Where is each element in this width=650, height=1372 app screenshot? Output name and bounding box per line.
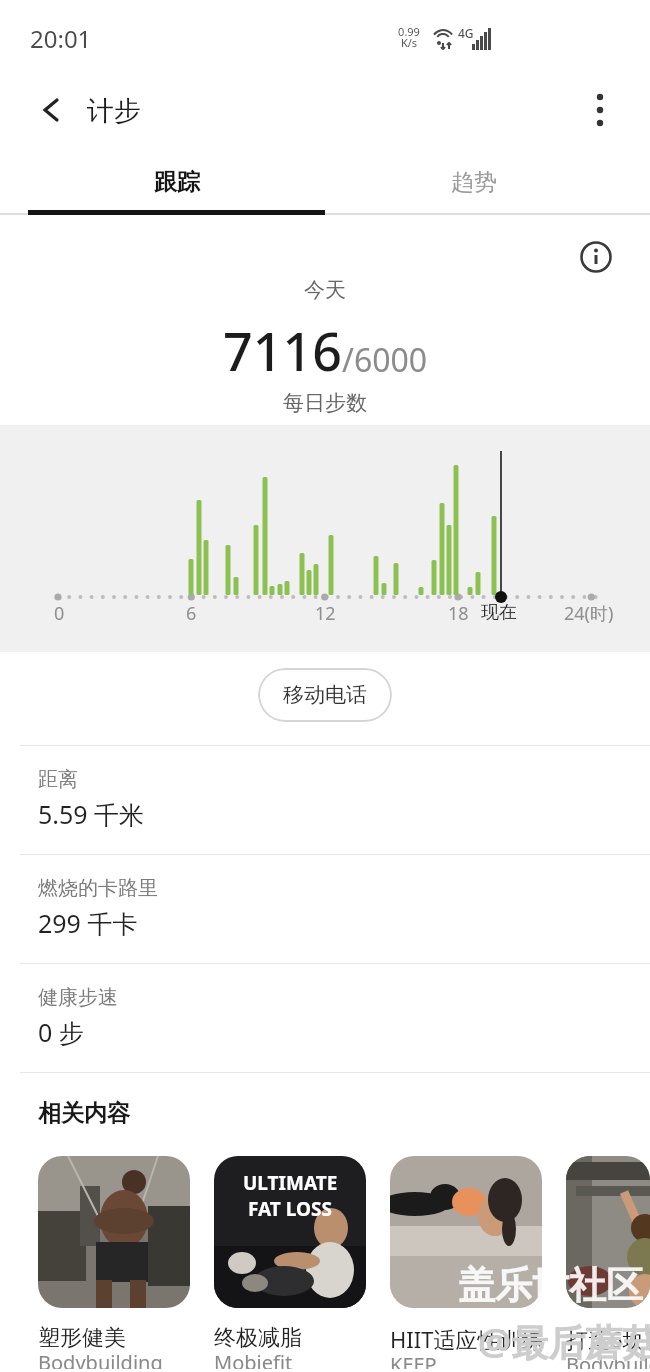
staticText: 打造6块腹肌 <box>566 1324 650 1354</box>
staticText: 每日步数 <box>0 390 650 416</box>
staticText: /6000 <box>342 338 428 382</box>
staticText: 移动电话 <box>283 682 367 708</box>
staticText: 6 <box>186 601 197 626</box>
button[interactable]: 燃烧的卡路里 <box>0 855 650 963</box>
staticText: 0 步 <box>38 1015 84 1049</box>
button[interactable]: 移动电话 <box>258 668 392 722</box>
button[interactable]: 跟踪 <box>28 150 325 215</box>
button[interactable]: ULTIMATE <box>214 1156 366 1308</box>
staticText: 12 <box>315 601 336 626</box>
staticText: 健康步速 <box>38 985 118 1010</box>
staticText: FAT LOSS <box>248 1196 332 1222</box>
staticText: 盖乐世社区 <box>458 1262 643 1309</box>
button[interactable] <box>568 229 624 285</box>
staticText: 跟踪 <box>154 168 200 197</box>
button[interactable] <box>566 1156 650 1308</box>
staticText: @最后蘑菇 <box>478 1316 650 1367</box>
staticText: 现在 <box>481 601 517 624</box>
staticText: 18 <box>448 601 469 626</box>
staticText: 距离 <box>38 767 78 792</box>
staticText: 0.99 K/s <box>398 24 420 51</box>
button[interactable] <box>390 1156 542 1308</box>
staticText: 塑形健美 <box>38 1324 126 1352</box>
staticText: 燃烧的卡路里 <box>38 876 158 901</box>
button[interactable] <box>28 86 76 134</box>
staticText: KEEP <box>390 1351 437 1369</box>
button[interactable]: 健康步速 <box>0 964 650 1072</box>
staticText: 4G <box>458 25 474 41</box>
button[interactable] <box>38 1156 190 1308</box>
staticText: HIIT适应性训练 <box>390 1324 544 1354</box>
staticText: 5.59 千米 <box>38 797 145 831</box>
staticText: 趋势 <box>451 168 497 197</box>
staticText: 7116 <box>223 315 342 386</box>
staticText: 299 千卡 <box>38 906 138 940</box>
staticText: 今天 <box>0 277 650 303</box>
button[interactable] <box>576 86 624 134</box>
staticText: 相关内容 <box>38 1099 130 1128</box>
button[interactable]: 距离 <box>0 746 650 854</box>
staticText: 计步 <box>87 94 141 128</box>
staticText: ULTIMATE <box>243 1170 338 1196</box>
staticText: 0 <box>54 601 65 626</box>
staticText: 终极减脂 <box>214 1324 302 1352</box>
staticText: Bodybuilding <box>38 1349 163 1369</box>
staticText: 20:01 <box>30 22 92 55</box>
staticText: Bodybuilding <box>566 1351 650 1369</box>
staticText: Mobiefit <box>214 1349 293 1369</box>
button[interactable]: 趋势 <box>325 150 622 215</box>
staticText: 24(时) <box>564 601 614 626</box>
